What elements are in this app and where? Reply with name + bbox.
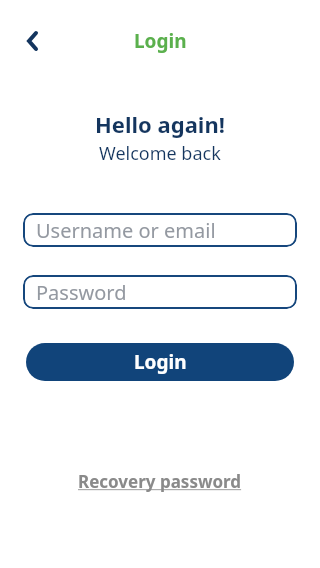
button[interactable]: Recovery password [78, 468, 242, 494]
staticText: Password [36, 279, 127, 306]
button[interactable] [18, 27, 46, 55]
staticText: Welcome back [99, 141, 221, 163]
button[interactable]: Login [26, 343, 294, 381]
button[interactable]: Username or email [23, 213, 297, 247]
staticText: Recovery password [78, 470, 242, 493]
staticText: Login [134, 28, 187, 54]
button[interactable]: Password [23, 275, 297, 309]
staticText: Hello again! [95, 109, 225, 139]
staticText: Username or email [36, 217, 216, 244]
staticText: Login [134, 349, 187, 375]
